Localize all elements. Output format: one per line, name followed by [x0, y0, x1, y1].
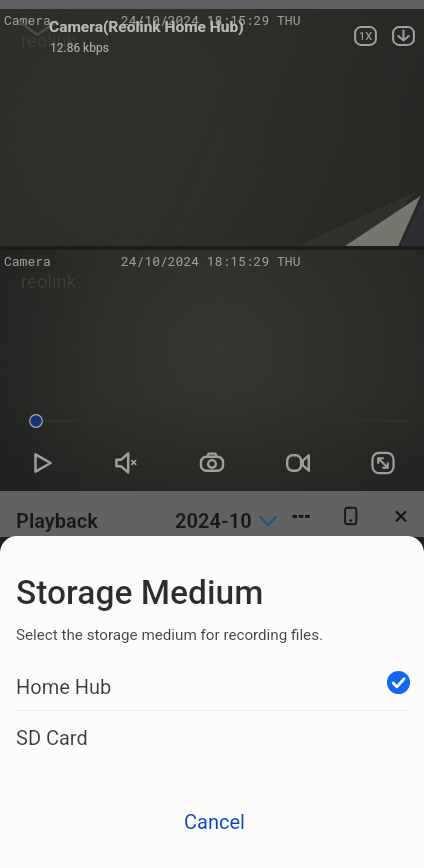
- staticText: 12.86 kbps: [50, 41, 109, 55]
- button[interactable]: Close: [389, 503, 411, 525]
- button[interactable]: Phone storage: [340, 503, 362, 525]
- staticText: Home Hub: [16, 675, 112, 698]
- button[interactable]: Download: [392, 26, 415, 46]
- staticText: Storage Medium: [16, 573, 264, 612]
- button[interactable]: Select month: [258, 512, 278, 532]
- button[interactable]: Fullscreen: [361, 441, 405, 485]
- staticText: Camera: [4, 11, 51, 28]
- staticText: Camera(Reolink Home Hub): [49, 18, 244, 36]
- button[interactable]: Playback speed 1X: [354, 26, 377, 46]
- button[interactable]: [0, 711, 424, 760]
- button[interactable]: Mute: [105, 441, 149, 485]
- button[interactable]: Record: [276, 441, 320, 485]
- staticText: reolink: [21, 30, 77, 52]
- staticText: Camera: [4, 252, 51, 269]
- staticText: SD Card: [16, 726, 88, 749]
- button[interactable]: 2024-10: [0, 0, 77, 23]
- staticText: 1X: [359, 30, 373, 43]
- staticText: reolink: [21, 271, 77, 293]
- staticText: 24/10/2024 18:15:29 THU: [121, 11, 301, 28]
- button[interactable]: More: [289, 506, 311, 526]
- button[interactable]: [0, 658, 424, 707]
- button[interactable]: Play: [20, 441, 64, 485]
- staticText: Cancel: [184, 810, 245, 833]
- staticText: Select the storage medium for recording …: [16, 626, 324, 644]
- button[interactable]: [0, 800, 424, 852]
- button[interactable]: Playback: [0, 0, 82, 23]
- staticText: 24/10/2024 18:15:29 THU: [121, 252, 301, 269]
- button[interactable]: Snapshot: [190, 441, 234, 485]
